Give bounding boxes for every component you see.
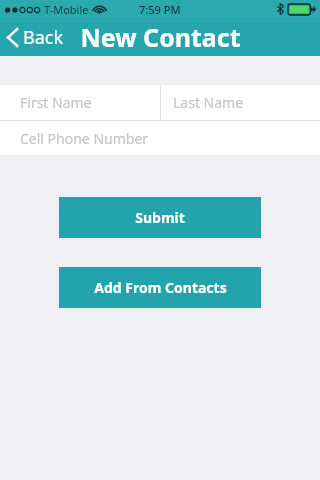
staticText: T-Mobile bbox=[44, 2, 89, 17]
button[interactable]: First Name bbox=[0, 85, 160, 120]
staticText: Add From Contacts bbox=[94, 278, 227, 297]
button[interactable]: Submit bbox=[59, 197, 261, 238]
staticText: Submit bbox=[135, 208, 185, 227]
staticText: 7:59 PM bbox=[139, 2, 181, 17]
button[interactable]: Add From Contacts bbox=[59, 267, 261, 308]
button[interactable]: Cell Phone Number bbox=[0, 121, 320, 155]
button[interactable]: Last Name bbox=[161, 85, 320, 120]
staticText: First Name bbox=[20, 93, 92, 112]
staticText: New Contact bbox=[80, 20, 241, 54]
staticText: Back bbox=[23, 25, 64, 50]
staticText: Cell Phone Number bbox=[20, 129, 149, 148]
staticText: Last Name bbox=[173, 93, 244, 112]
button[interactable]: Back bbox=[0, 18, 74, 56]
